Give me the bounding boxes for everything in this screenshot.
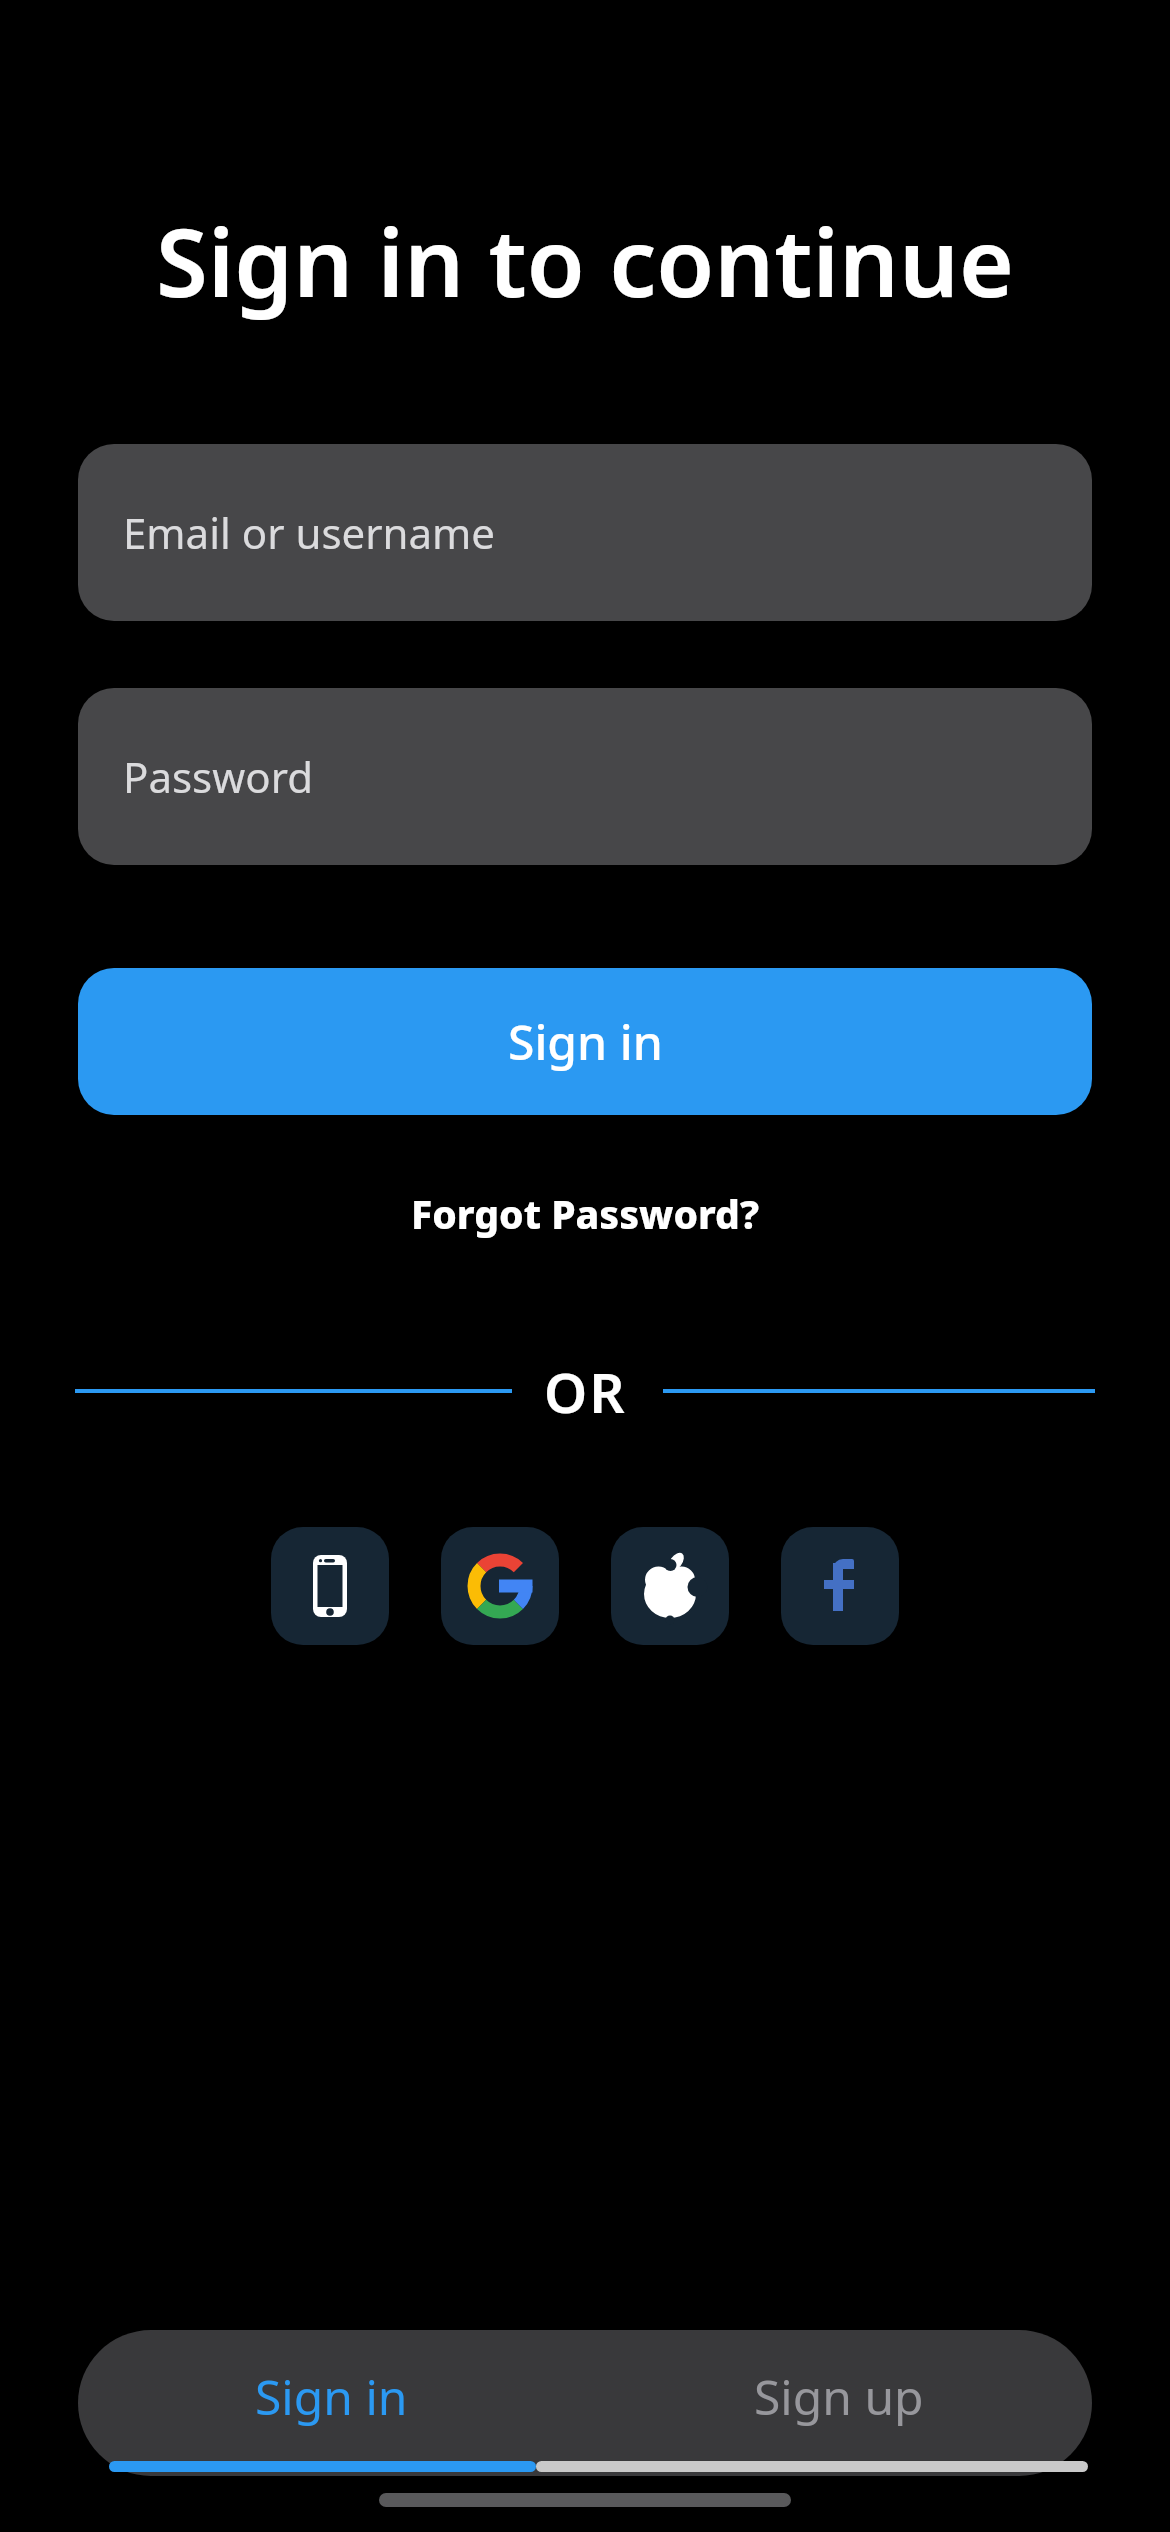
staticText: Sign in to continue xyxy=(156,197,1015,325)
button[interactable]: Forgot Password? xyxy=(411,1187,759,1240)
button[interactable] xyxy=(611,1527,729,1645)
staticText: OR xyxy=(544,1354,627,1429)
staticText: Forgot Password? xyxy=(411,1187,759,1240)
staticText: Email or username xyxy=(123,504,496,561)
button[interactable] xyxy=(441,1527,559,1645)
staticText: Sign in xyxy=(255,2364,408,2429)
staticText: Sign up xyxy=(754,2364,924,2429)
button[interactable] xyxy=(271,1527,389,1645)
button[interactable]: Sign in xyxy=(78,968,1092,1115)
button[interactable]: Sign in xyxy=(78,2330,585,2476)
button[interactable] xyxy=(781,1527,899,1645)
button[interactable]: Password xyxy=(78,688,1092,865)
button[interactable]: Email or username xyxy=(78,444,1092,621)
button[interactable]: Sign up xyxy=(585,2330,1092,2476)
staticText: Password xyxy=(123,748,313,805)
staticText: Sign in xyxy=(508,1009,663,1074)
